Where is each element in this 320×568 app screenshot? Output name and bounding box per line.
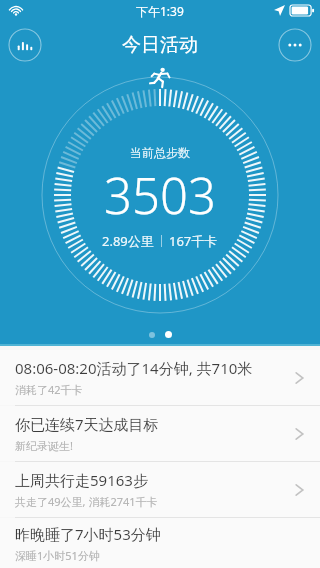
- button[interactable]: Page 2: [165, 331, 172, 338]
- staticText: 上周共行走59163步: [15, 470, 148, 490]
- staticText: 下午1:39: [136, 3, 184, 19]
- button[interactable]: More options: [278, 28, 312, 62]
- staticText: 08:06-08:20活动了14分钟, 共710米: [15, 358, 253, 378]
- staticText: 你已连续7天达成目标: [15, 414, 159, 434]
- button[interactable]: Page 1: [149, 332, 155, 338]
- staticText: 3503: [104, 162, 216, 229]
- button[interactable]: 昨晚睡了7小时53分钟: [0, 518, 320, 568]
- button[interactable]: 你已连续7天达成目标: [0, 406, 320, 461]
- staticText: 深睡1小时51分钟: [15, 548, 100, 563]
- staticText: 当前总步数: [130, 145, 190, 160]
- button[interactable]: Statistics: [8, 28, 42, 62]
- staticText: 昨晚睡了7小时53分钟: [15, 524, 161, 544]
- staticText: 新纪录诞生!: [15, 438, 73, 453]
- staticText: 2.89公里: [102, 232, 154, 250]
- staticText: 共走了49公里, 消耗2741千卡: [15, 494, 158, 509]
- button[interactable]: 上周共行走59163步: [0, 462, 320, 517]
- staticText: 167千卡: [169, 232, 218, 250]
- staticText: 消耗了42千卡: [15, 382, 83, 397]
- staticText: 今日活动: [122, 33, 198, 57]
- button[interactable]: 08:06-08:20活动了14分钟, 共710米: [0, 350, 320, 405]
